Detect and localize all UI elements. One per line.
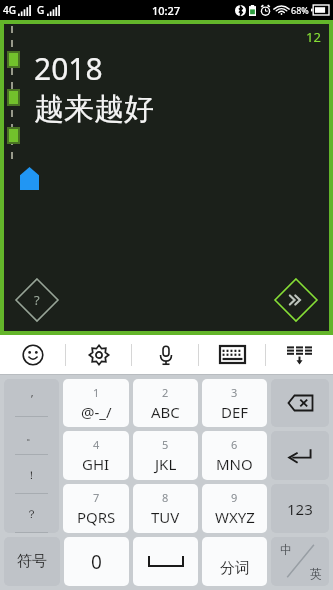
staticText: 1 <box>93 385 100 400</box>
staticText: TUV <box>151 507 180 527</box>
button[interactable]: Hide keyboard <box>266 335 333 374</box>
button[interactable]: 1 <box>63 379 129 427</box>
button[interactable]: Number mode <box>271 484 329 533</box>
staticText: 越来越好 <box>34 90 154 128</box>
staticText: ！ <box>26 468 37 482</box>
staticText: 5 <box>162 437 169 452</box>
staticText: 2 <box>162 385 169 400</box>
button[interactable]: Emoji <box>0 335 66 374</box>
button[interactable]: 9 <box>202 484 267 533</box>
staticText: 7 <box>93 490 100 505</box>
staticText: 0 <box>91 549 102 575</box>
staticText: PQRS <box>77 507 116 527</box>
staticText: MNO <box>216 454 253 474</box>
staticText: ’ <box>31 391 33 406</box>
staticText: DEF <box>221 402 249 422</box>
button[interactable]: 5 <box>133 431 198 480</box>
button[interactable]: Help <box>14 277 60 323</box>
staticText: WXYZ <box>215 507 255 527</box>
staticText: 8 <box>162 490 169 505</box>
staticText: 分词 <box>220 559 250 578</box>
staticText: @-_/ <box>81 402 112 422</box>
button[interactable]: 7 <box>63 484 129 533</box>
button[interactable]: Space <box>133 537 198 586</box>
staticText: 9 <box>231 490 238 505</box>
staticText: ? <box>34 291 40 309</box>
button[interactable]: 符号 <box>4 537 60 586</box>
button[interactable]: Next <box>273 277 319 323</box>
staticText: 10:27 <box>152 3 181 18</box>
staticText: GHI <box>82 454 110 474</box>
staticText: 中 <box>280 542 292 557</box>
button[interactable]: 8 <box>133 484 198 533</box>
staticText: ABC <box>151 402 180 422</box>
staticText: 6 <box>231 437 238 452</box>
staticText: 2018 <box>34 48 103 89</box>
button[interactable]: 分词 <box>202 537 267 586</box>
button[interactable]: Voice input <box>132 335 199 374</box>
staticText: 123 <box>287 499 313 519</box>
button[interactable]: 3 <box>202 379 267 427</box>
staticText: G <box>37 3 45 17</box>
staticText: 4G <box>3 3 16 17</box>
staticText: 68% <box>291 4 309 16</box>
button[interactable]: Settings <box>66 335 132 374</box>
button[interactable]: 0 <box>64 537 129 586</box>
staticText: JKL <box>155 454 177 474</box>
staticText: 。 <box>26 429 37 443</box>
button[interactable]: Punctuation <box>4 379 59 533</box>
button[interactable]: 4 <box>63 431 129 480</box>
button[interactable]: 2 <box>133 379 198 427</box>
button[interactable]: Backspace <box>271 379 329 427</box>
staticText: 3 <box>231 385 238 400</box>
staticText: 4 <box>93 437 100 452</box>
staticText: 符号 <box>17 552 47 571</box>
button[interactable]: Chinese English toggle <box>271 537 329 586</box>
button[interactable]: Enter <box>271 431 329 480</box>
staticText: 12 <box>306 28 321 46</box>
staticText: 英 <box>310 566 322 581</box>
button[interactable]: 6 <box>202 431 267 480</box>
staticText: ？ <box>26 507 37 521</box>
button[interactable]: Keyboard <box>199 335 266 374</box>
